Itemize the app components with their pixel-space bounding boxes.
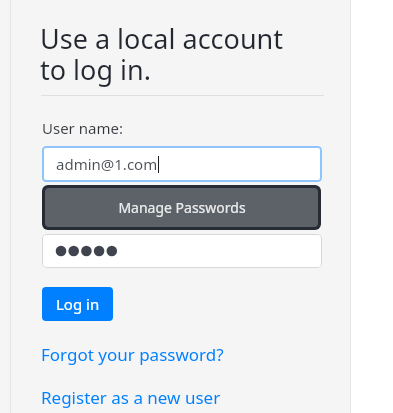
- staticText: Use a local account to log in.: [40, 20, 306, 88]
- staticText: Register as a new user: [41, 386, 221, 409]
- staticText: Log in: [56, 294, 100, 314]
- staticText: admin@1.com: [56, 154, 158, 174]
- staticText: Forgot your password?: [41, 343, 224, 366]
- staticText: Manage Passwords: [118, 198, 246, 217]
- button[interactable]: Password: [42, 234, 322, 268]
- button[interactable]: Manage Passwords: [45, 188, 318, 227]
- button[interactable]: admin@1.com: [42, 146, 322, 182]
- button[interactable]: Forgot your password?: [41, 343, 224, 366]
- staticText: User name:: [42, 118, 123, 138]
- button[interactable]: Register as a new user: [41, 386, 221, 409]
- button[interactable]: Log in: [42, 287, 113, 321]
